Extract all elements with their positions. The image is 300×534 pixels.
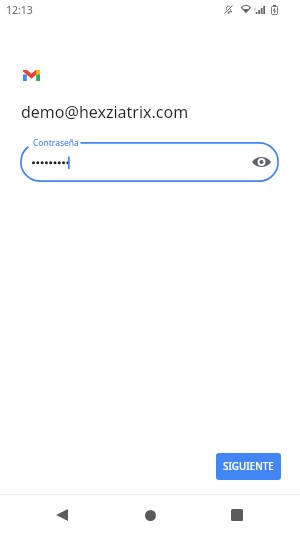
button[interactable]: Mostrar contraseña bbox=[249, 150, 273, 174]
staticText: demo@hexziatrix.com bbox=[21, 101, 189, 123]
button[interactable]: Atrás bbox=[0, 494, 100, 534]
button[interactable]: Inicio bbox=[100, 494, 200, 534]
staticText: 12:13 bbox=[6, 3, 33, 17]
button[interactable]: SIGUIENTE bbox=[216, 453, 281, 480]
staticText: Contraseña bbox=[33, 137, 79, 149]
button[interactable]: Recientes bbox=[200, 494, 300, 534]
staticText: SIGUIENTE bbox=[223, 460, 274, 473]
